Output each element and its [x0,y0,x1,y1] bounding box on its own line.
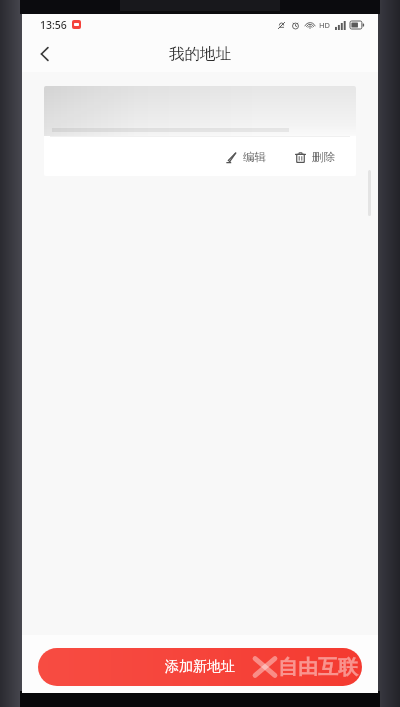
staticText: 删除 [312,150,335,164]
button[interactable]: 添加新地址 [38,648,362,686]
button[interactable]: 删除 [291,145,338,169]
staticText: HD [319,20,331,30]
button[interactable]: 编辑 [44,86,356,176]
staticText: 13:56 [40,18,67,32]
staticText: 编辑 [243,150,266,164]
button[interactable]: Back [22,35,66,72]
staticText: 自由互联 [278,655,358,680]
staticText: 添加新地址 [165,658,235,676]
button[interactable]: 编辑 [222,145,269,169]
staticText: 我的地址 [169,44,231,64]
